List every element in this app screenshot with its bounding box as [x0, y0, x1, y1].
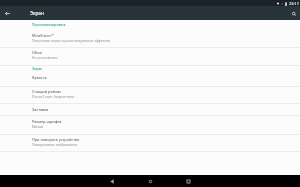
staticText: Малый	[32, 124, 44, 128]
button[interactable]: Home	[131, 175, 169, 187]
staticText: Спящий режим	[32, 89, 61, 94]
button[interactable]: Search	[288, 8, 299, 19]
button[interactable]: MiraVision™	[0, 29, 300, 48]
staticText: Экран	[30, 10, 44, 16]
staticText: Получение самых лучших визуальных эффект…	[32, 38, 110, 42]
button[interactable]: Спящий режим	[0, 86, 300, 103]
staticText: 23:11	[289, 1, 299, 6]
staticText: MiraVision™	[32, 33, 54, 38]
staticText: При повороте устройства	[32, 137, 80, 142]
staticText: Размер шрифта	[32, 119, 62, 124]
button[interactable]: Back	[2, 8, 13, 19]
staticText: Заставка	[32, 107, 49, 112]
button[interactable]: Recents	[169, 175, 207, 187]
button[interactable]: Размер шрифта	[0, 116, 300, 134]
staticText: Обои	[32, 50, 42, 55]
staticText: После 2 мин. бездействия	[32, 94, 74, 98]
staticText: Поворачивать изображение	[32, 142, 78, 146]
staticText: Экран	[32, 66, 43, 71]
button[interactable]: Back	[93, 175, 131, 187]
button[interactable]: При повороте устройства	[0, 134, 300, 151]
button[interactable]: Заставка	[0, 104, 300, 115]
button[interactable]: Обои	[0, 48, 300, 65]
button[interactable]: Яркость	[0, 73, 300, 86]
staticText: Яркость	[32, 75, 47, 80]
staticText: Не установлены	[32, 55, 58, 59]
staticText: Персонализировать	[32, 22, 66, 27]
